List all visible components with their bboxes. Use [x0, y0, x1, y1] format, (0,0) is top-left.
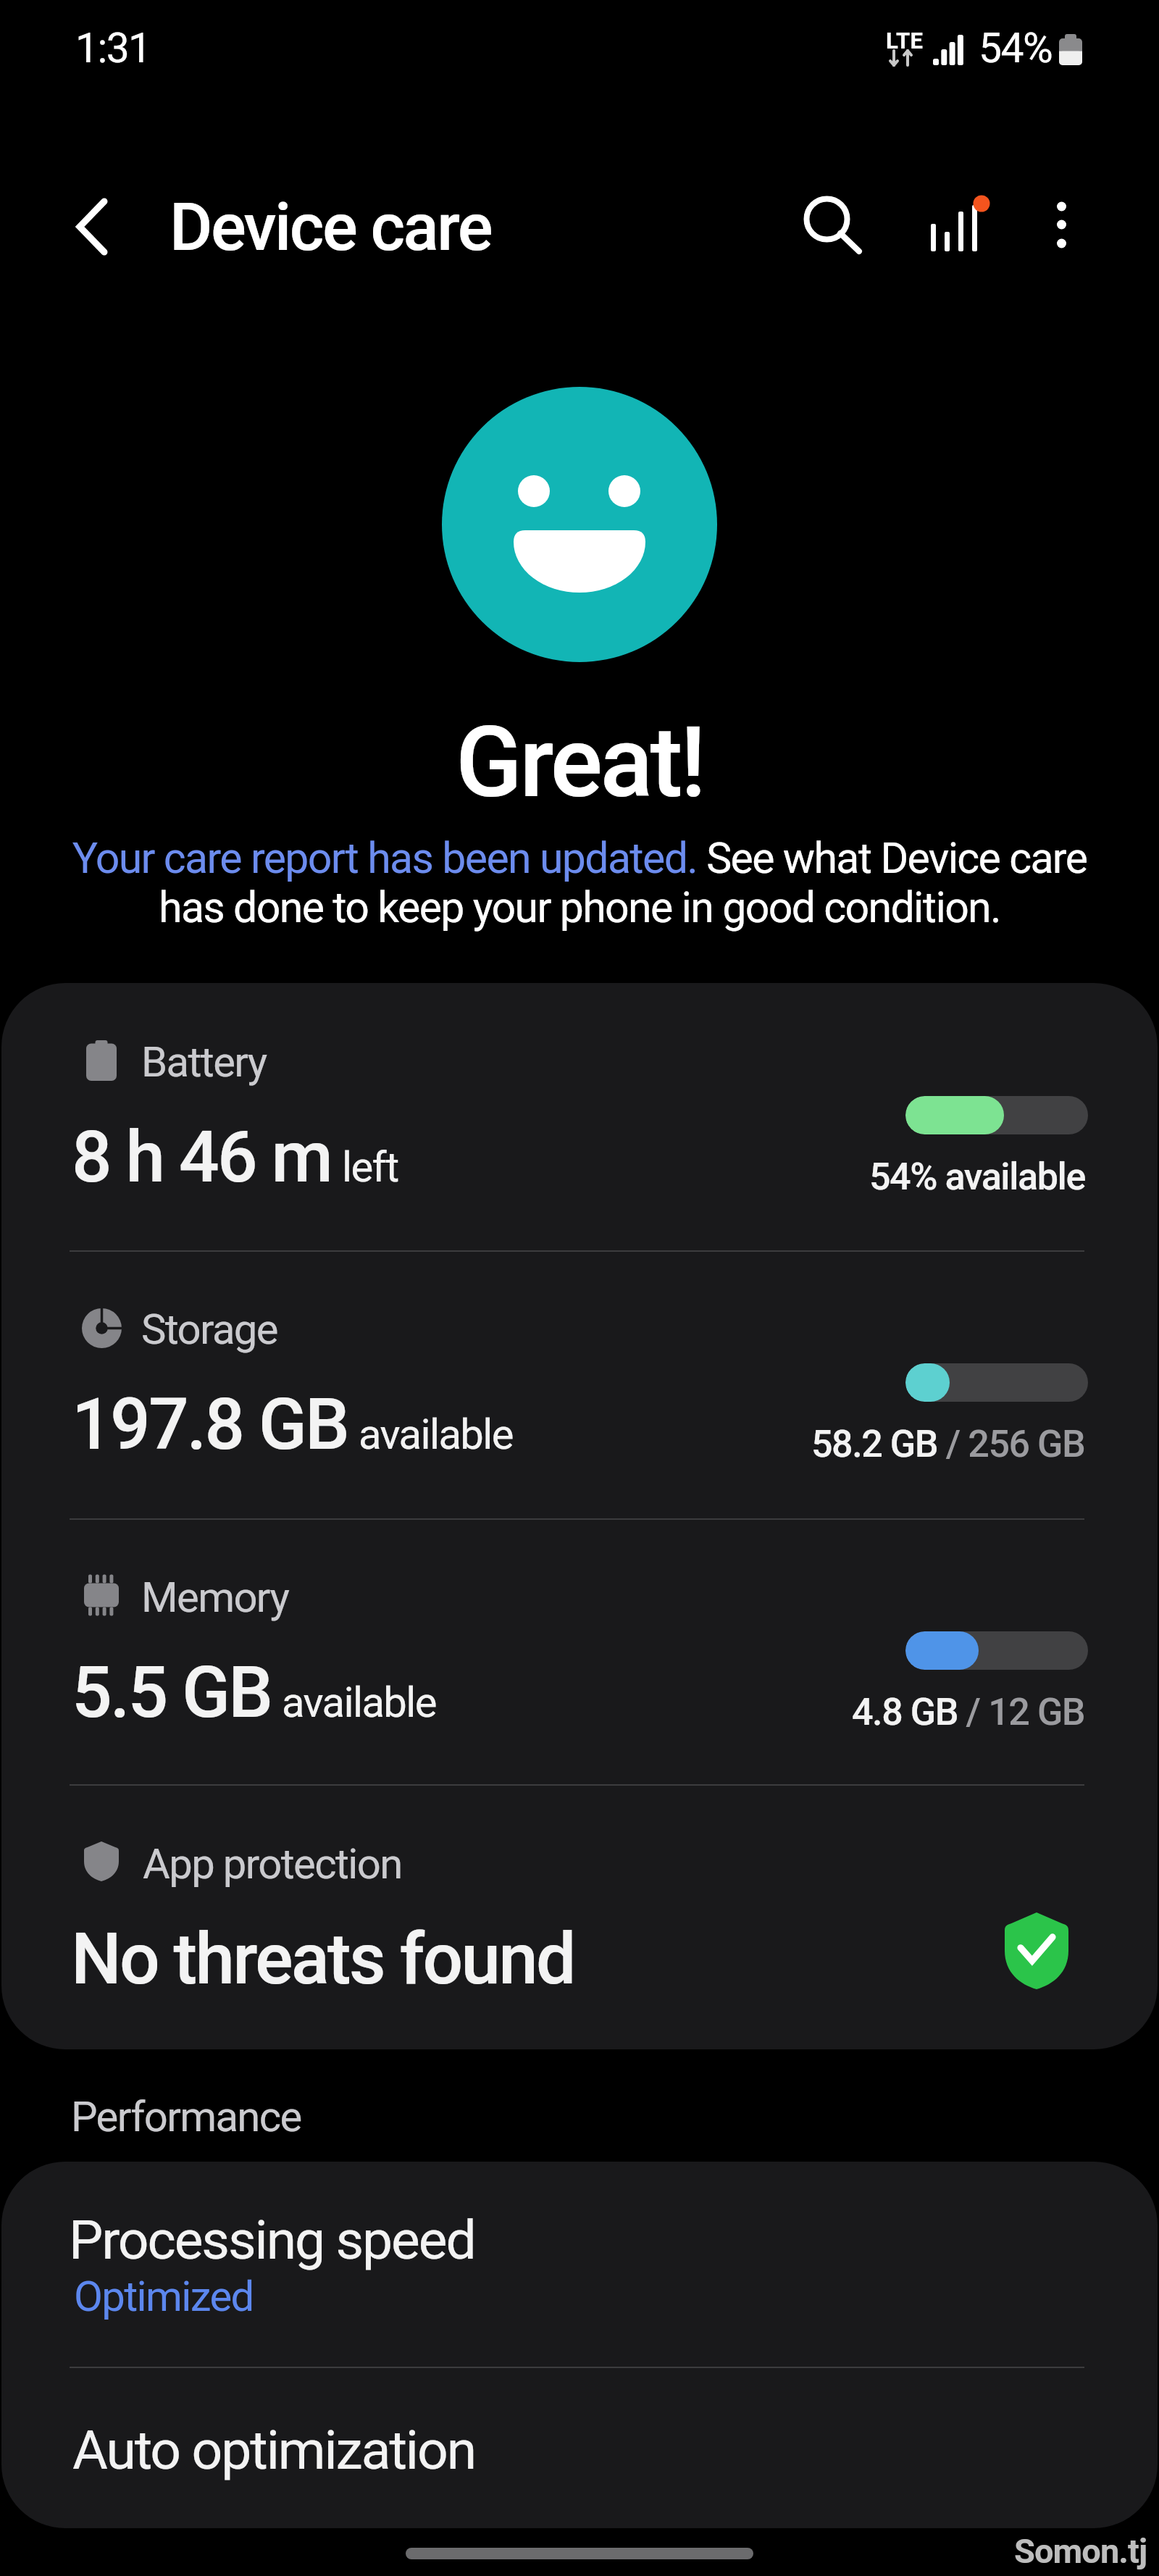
staticText: 54% available	[869, 1155, 1085, 1199]
staticText: left	[342, 1142, 398, 1192]
staticText: 8 h 46 m	[72, 1116, 332, 1199]
staticText: 1:31	[75, 24, 151, 72]
button[interactable]: Auto optimization	[1, 2368, 1158, 2528]
staticText: Somon.tj	[1014, 2531, 1147, 2571]
staticText: 54%	[979, 24, 1053, 72]
button[interactable]: Memory	[1, 1518, 1158, 1786]
staticText: Performance	[71, 2092, 301, 2141]
button[interactable]: Storage	[1, 1250, 1158, 1518]
staticText: Auto optimization	[72, 2418, 475, 2482]
staticText: Great!	[456, 706, 704, 820]
button[interactable]: Device care status: Great	[442, 387, 717, 662]
staticText: 5.5 GB	[72, 1651, 272, 1734]
button[interactable]: App protection	[1, 1784, 1158, 2049]
button[interactable]: Processing speed	[1, 2162, 1158, 2367]
staticText: 4.8 GB / 12 GB	[852, 1690, 1085, 1734]
staticText: 197.8 GB	[72, 1383, 348, 1466]
staticText: Memory	[141, 1573, 289, 1622]
staticText: available	[359, 1410, 513, 1459]
staticText: Processing speed	[69, 2208, 475, 2272]
button[interactable]: Device care report	[916, 183, 996, 263]
button[interactable]: More options	[1018, 183, 1105, 270]
staticText: Your care report has been updated. See w…	[68, 833, 1091, 932]
staticText: Optimized	[74, 2272, 254, 2321]
staticText: Device care	[170, 189, 492, 267]
staticText: App protection	[143, 1839, 402, 1889]
button[interactable]: Navigate up	[55, 183, 129, 270]
staticText: Battery	[141, 1037, 267, 1087]
button[interactable]: Search	[784, 183, 871, 270]
staticText: Storage	[141, 1305, 277, 1354]
button[interactable]: Battery	[1, 983, 1158, 1250]
staticText: LTE	[886, 28, 924, 54]
staticText: available	[282, 1678, 436, 1727]
staticText: No threats found	[71, 1918, 574, 2001]
staticText: 58.2 GB / 256 GB	[811, 1422, 1085, 1466]
